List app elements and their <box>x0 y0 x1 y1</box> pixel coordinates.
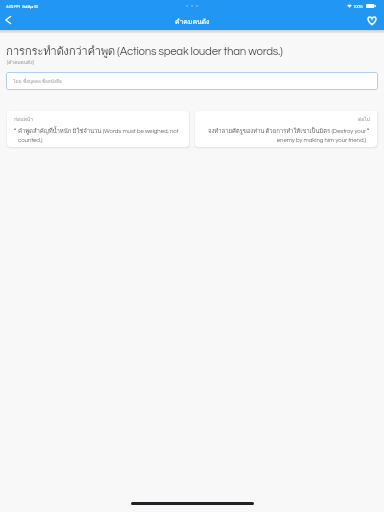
button[interactable]: Back <box>1 13 15 27</box>
staticText: ก่อนหน้า <box>14 115 182 123</box>
staticText: 100% <box>353 4 364 8</box>
staticText: Sat Apr 30 <box>22 4 38 8</box>
button[interactable]: ก่อนหน้า <box>7 111 189 147</box>
staticText: การกระทำดังกว่าคำพูด (Actions speak loud… <box>6 42 283 60</box>
staticText: คำคมคนดัง <box>175 16 210 27</box>
staticText: คำพูดสำคัญที่น้ำหนัก มิใช่จำนวน (Words m… <box>18 126 182 143</box>
staticText: • <box>367 126 370 132</box>
button[interactable]: Favorite <box>365 13 379 27</box>
staticText: • <box>14 126 17 132</box>
staticText: ต่อไป <box>202 115 370 123</box>
staticText: โดย: ชื่อบุคคล ชื่อหนังสือ <box>13 78 62 85</box>
staticText: จงทำลายศัตรูของท่าน ด้วยการทำให้เขาเป็นม… <box>202 126 366 143</box>
staticText: [คำคมคนดัง] <box>7 58 34 66</box>
button[interactable]: ต่อไป <box>195 111 377 147</box>
button[interactable]: โดย: ชื่อบุคคล ชื่อหนังสือ <box>6 72 378 90</box>
staticText: 4:03 PM <box>6 4 20 8</box>
